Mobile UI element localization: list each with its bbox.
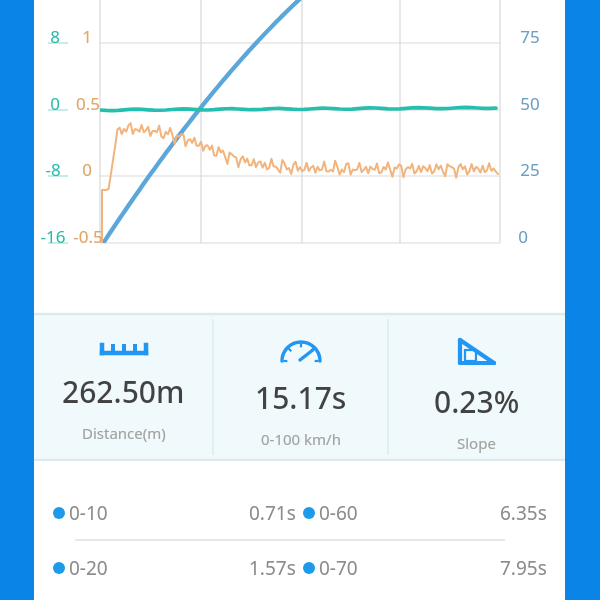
staticText: 15.17s bbox=[255, 377, 347, 418]
staticText: 75 bbox=[510, 25, 550, 48]
staticText: Distance(m) bbox=[82, 423, 166, 443]
staticText: 0-20 bbox=[69, 555, 108, 581]
staticText: 0-60 bbox=[319, 500, 358, 526]
button[interactable]: Distance bbox=[34, 313, 213, 461]
staticText: 7.95s bbox=[500, 555, 547, 581]
button[interactable]: Slope bbox=[388, 313, 565, 461]
other: 0 to 100 km/h time bbox=[278, 335, 324, 365]
staticText: 262.50m bbox=[62, 371, 185, 412]
staticText: 1.57s bbox=[249, 555, 296, 581]
staticText: 0-100 km/h bbox=[261, 429, 341, 449]
other: Distance bbox=[96, 335, 152, 359]
staticText: 0 bbox=[510, 225, 536, 248]
staticText: 8 bbox=[38, 25, 72, 48]
staticText: Slope bbox=[457, 433, 496, 453]
staticText: 0.71s bbox=[249, 500, 296, 526]
staticText: 0-70 bbox=[319, 555, 358, 581]
staticText: 0.23% bbox=[434, 381, 520, 422]
staticText: 0.5 bbox=[68, 92, 108, 115]
staticText: 50 bbox=[510, 92, 550, 115]
staticText: 1 bbox=[74, 25, 100, 48]
button[interactable]: 0 to 100 km/h time bbox=[213, 313, 388, 461]
button[interactable]: 0-20 bbox=[34, 542, 565, 594]
staticText: 0-10 bbox=[69, 500, 108, 526]
staticText: 25 bbox=[510, 158, 550, 181]
staticText: -0.5 bbox=[64, 225, 112, 248]
staticText: 0 bbox=[74, 158, 100, 181]
button[interactable]: 0-10 bbox=[34, 487, 565, 539]
staticText: 6.35s bbox=[500, 500, 547, 526]
staticText: 0 bbox=[38, 92, 72, 115]
staticText: -8 bbox=[34, 158, 72, 181]
other: Slope bbox=[455, 335, 499, 369]
staticText: -16 bbox=[31, 225, 75, 248]
